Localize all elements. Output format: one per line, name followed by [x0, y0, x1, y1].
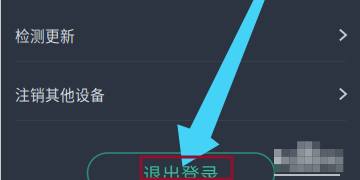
button[interactable]: 检测更新: [0, 6, 360, 64]
button[interactable]: 注销其他设备: [0, 65, 360, 123]
staticText: 注销其他设备: [15, 83, 105, 105]
staticText: 退出登录: [143, 159, 219, 180]
button[interactable]: 退出登录: [87, 153, 274, 180]
staticText: 检测更新: [15, 24, 75, 46]
